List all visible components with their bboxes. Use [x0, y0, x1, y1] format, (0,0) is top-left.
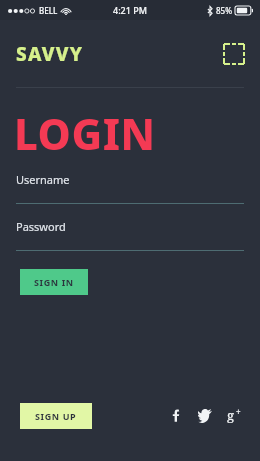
staticText: SIGN IN: [34, 276, 74, 288]
staticText: Username: [16, 172, 70, 187]
staticText: LOGIN: [14, 105, 156, 162]
button[interactable]: SIGN UP: [20, 403, 92, 429]
button[interactable]: Google Plus: [222, 404, 244, 426]
staticText: g: [227, 406, 234, 424]
staticText: SAVVY: [16, 41, 84, 67]
button[interactable]: Scan: [221, 41, 247, 67]
staticText: SIGN UP: [35, 410, 77, 422]
staticText: Password: [16, 219, 66, 234]
button[interactable]: Facebook: [166, 404, 188, 426]
staticText: +: [236, 406, 241, 417]
staticText: 4:21 PM: [113, 4, 147, 16]
button[interactable]: Password: [16, 219, 244, 251]
button[interactable]: Twitter: [194, 404, 216, 426]
button[interactable]: Username: [16, 172, 244, 204]
staticText: BELL: [39, 5, 58, 16]
button[interactable]: SIGN IN: [20, 269, 88, 295]
staticText: 85%: [216, 5, 232, 16]
